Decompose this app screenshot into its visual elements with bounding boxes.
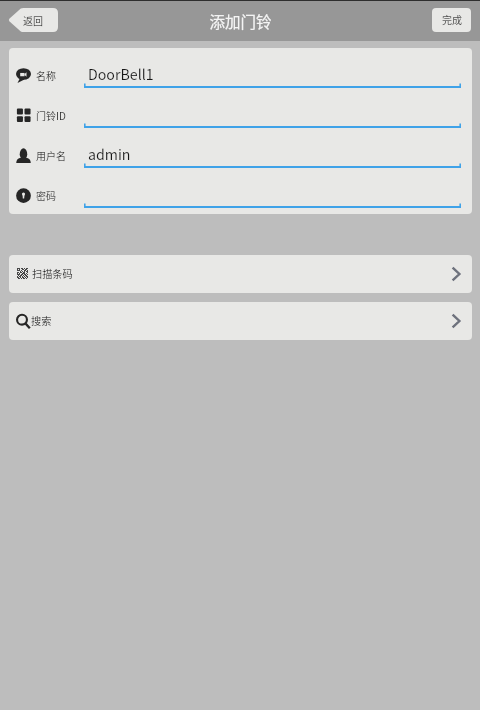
staticText: 返回 (23, 13, 43, 27)
staticText: 密码 (36, 188, 56, 202)
button[interactable]: 完成 (432, 8, 471, 32)
staticText: 添加门铃 (209, 10, 272, 32)
staticText: 用户名 (36, 148, 66, 162)
staticText: 名称 (36, 68, 56, 82)
button[interactable]: 扫描条码 (9, 255, 472, 293)
staticText: 完成 (442, 12, 462, 26)
staticText: 搜索 (31, 313, 52, 328)
staticText: 门铃ID (36, 108, 66, 122)
staticText: admin (88, 144, 131, 165)
staticText: DoorBell1 (88, 64, 154, 85)
button[interactable]: 返回 (8, 8, 58, 32)
staticText: 扫描条码 (32, 266, 73, 281)
button[interactable]: 搜索 (9, 302, 472, 340)
